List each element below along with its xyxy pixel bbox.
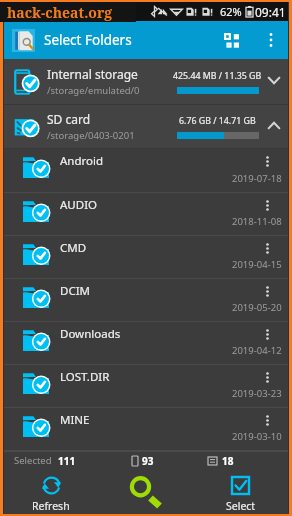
staticText: /storage/emulated/0	[47, 84, 140, 97]
button[interactable]: MINE	[4, 408, 288, 451]
staticText: CMD	[60, 240, 87, 256]
button[interactable]: Select	[193, 470, 288, 514]
button[interactable]: AUDIO	[4, 193, 288, 236]
button[interactable]: More options	[258, 27, 284, 53]
button[interactable]: CMD	[4, 236, 288, 279]
staticText: DCIM	[60, 283, 90, 299]
staticText: Selected	[14, 454, 52, 467]
button[interactable]: Refresh	[4, 470, 98, 514]
staticText: 425.44 MB / 11.35 GB	[173, 70, 262, 82]
staticText: 2019-03-23	[232, 387, 282, 400]
button[interactable]: Item options	[259, 369, 275, 385]
button[interactable]: Search	[98, 470, 193, 514]
staticText: 2019-03-10	[232, 430, 282, 443]
button[interactable]: Collapse	[263, 114, 284, 137]
button[interactable]: DCIM	[4, 279, 288, 322]
button[interactable]: Grid view	[215, 24, 247, 56]
staticText: Downloads	[60, 326, 121, 342]
staticText: Refresh	[32, 499, 70, 513]
staticText: 09:41	[255, 4, 286, 20]
staticText: 2019-07-18	[232, 172, 282, 185]
staticText: SD card	[47, 111, 91, 127]
button[interactable]: Item options	[259, 412, 275, 428]
staticText: AUDIO	[60, 197, 98, 213]
staticText: 62%	[220, 4, 242, 19]
button[interactable]: Internal storage	[4, 59, 288, 105]
button[interactable]: Item options	[259, 153, 275, 169]
button[interactable]: Expand	[263, 69, 284, 92]
staticText: hack-cheat.org	[7, 3, 113, 22]
button[interactable]: SD card	[4, 105, 288, 149]
button[interactable]: App icon	[12, 29, 35, 52]
staticText: /storage/0403-0201	[47, 129, 135, 142]
staticText: MINE	[60, 412, 90, 428]
staticText: 2019-04-12	[232, 344, 282, 357]
staticText: 93	[142, 454, 154, 468]
staticText: Internal storage	[47, 66, 138, 82]
button[interactable]: Item options	[259, 326, 275, 342]
staticText: 2018-11-08	[232, 215, 282, 228]
staticText: LOST.DIR	[60, 369, 110, 385]
staticText: 2019-04-15	[232, 258, 282, 271]
staticText: Android	[60, 153, 104, 169]
button[interactable]: Downloads	[4, 322, 288, 365]
staticText: Select Folders	[44, 31, 132, 49]
staticText: 2019-05-20	[232, 301, 282, 314]
staticText: 111	[58, 454, 76, 468]
button[interactable]: Android	[4, 149, 288, 193]
button[interactable]: Item options	[259, 197, 275, 213]
button[interactable]: Item options	[259, 240, 275, 256]
button[interactable]: Item options	[259, 283, 275, 299]
staticText: Select	[226, 499, 256, 513]
button[interactable]: LOST.DIR	[4, 365, 288, 408]
staticText: 18	[222, 454, 234, 468]
staticText: 6.76 GB / 14.71 GB	[179, 115, 256, 127]
